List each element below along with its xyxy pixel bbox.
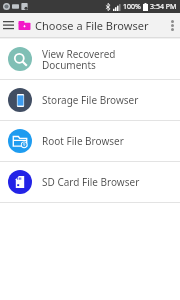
button[interactable]: Open navigation drawer <box>0 16 17 35</box>
button[interactable]: Root File Browser <box>0 121 180 161</box>
button[interactable]: View Recovered Documents <box>0 39 180 79</box>
button[interactable]: SD Card File Browser <box>0 162 180 202</box>
staticText: 3:54 PM <box>150 2 177 12</box>
staticText: SD Card File Browser <box>42 175 140 189</box>
staticText: Storage File Browser <box>42 93 139 107</box>
staticText: Root File Browser <box>42 134 124 148</box>
staticText: View Recovered Documents <box>42 47 116 72</box>
button[interactable]: Storage File Browser <box>0 80 180 120</box>
staticText: Choose a File Browser <box>35 18 165 33</box>
staticText: 100% <box>123 2 141 12</box>
button[interactable]: More options <box>165 13 180 37</box>
